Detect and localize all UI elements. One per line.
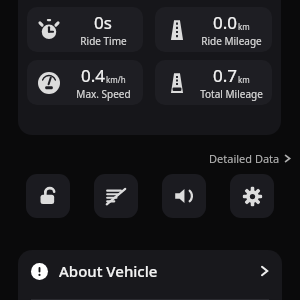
staticText: About Vehicle	[59, 261, 158, 281]
button[interactable]: About Vehicle	[18, 250, 282, 292]
button[interactable]: Mute notifications	[94, 174, 138, 218]
button[interactable]: 0.7	[155, 60, 272, 105]
button[interactable]: 0.0	[155, 7, 272, 52]
button[interactable]: Unlock	[26, 174, 70, 218]
staticText: Total Mileage	[200, 87, 263, 101]
staticText: Max. Speed	[76, 87, 131, 101]
staticText: km/h	[106, 74, 126, 85]
button[interactable]: 0s	[27, 7, 143, 52]
staticText: Detailed Data	[209, 151, 280, 166]
staticText: Ride Mileage	[201, 34, 262, 48]
staticText: 0.7	[213, 64, 238, 87]
staticText: 0s	[94, 11, 112, 34]
staticText: Ride Time	[80, 34, 127, 48]
button[interactable]: Sound	[162, 174, 206, 218]
staticText: km	[238, 21, 250, 32]
staticText: 0.4	[81, 64, 106, 87]
staticText: 0.0	[213, 11, 238, 34]
button[interactable]: Detailed Data	[205, 148, 295, 169]
button[interactable]: Settings	[230, 174, 274, 218]
staticText: km	[238, 74, 250, 85]
button[interactable]: 0.4	[27, 60, 143, 105]
